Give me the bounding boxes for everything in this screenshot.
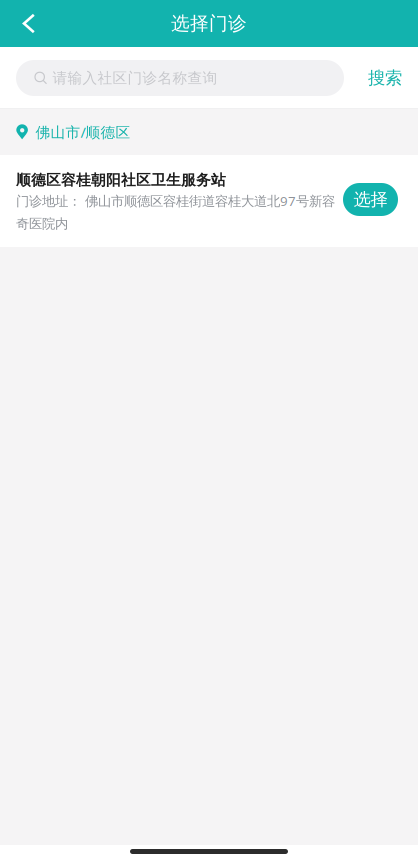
staticText: 顺德区容桂朝阳社区卫生服务站 bbox=[16, 171, 226, 189]
button[interactable]: Back bbox=[0, 0, 52, 47]
staticText: 选择门诊 bbox=[171, 12, 247, 35]
button[interactable]: 选择 bbox=[343, 183, 398, 216]
staticText: 佛山市/顺德区 bbox=[35, 122, 130, 142]
staticText: 请输入社区门诊名称查询 bbox=[52, 69, 217, 87]
staticText: 选择 bbox=[353, 189, 387, 210]
staticText: 搜索 bbox=[368, 67, 402, 89]
button[interactable]: 佛山市/顺德区 bbox=[0, 109, 418, 155]
staticText: 门诊地址： 佛山市顺德区容桂街道容桂大道北97号新容奇医院内 bbox=[16, 192, 335, 232]
button[interactable]: 搜索 bbox=[358, 51, 412, 105]
